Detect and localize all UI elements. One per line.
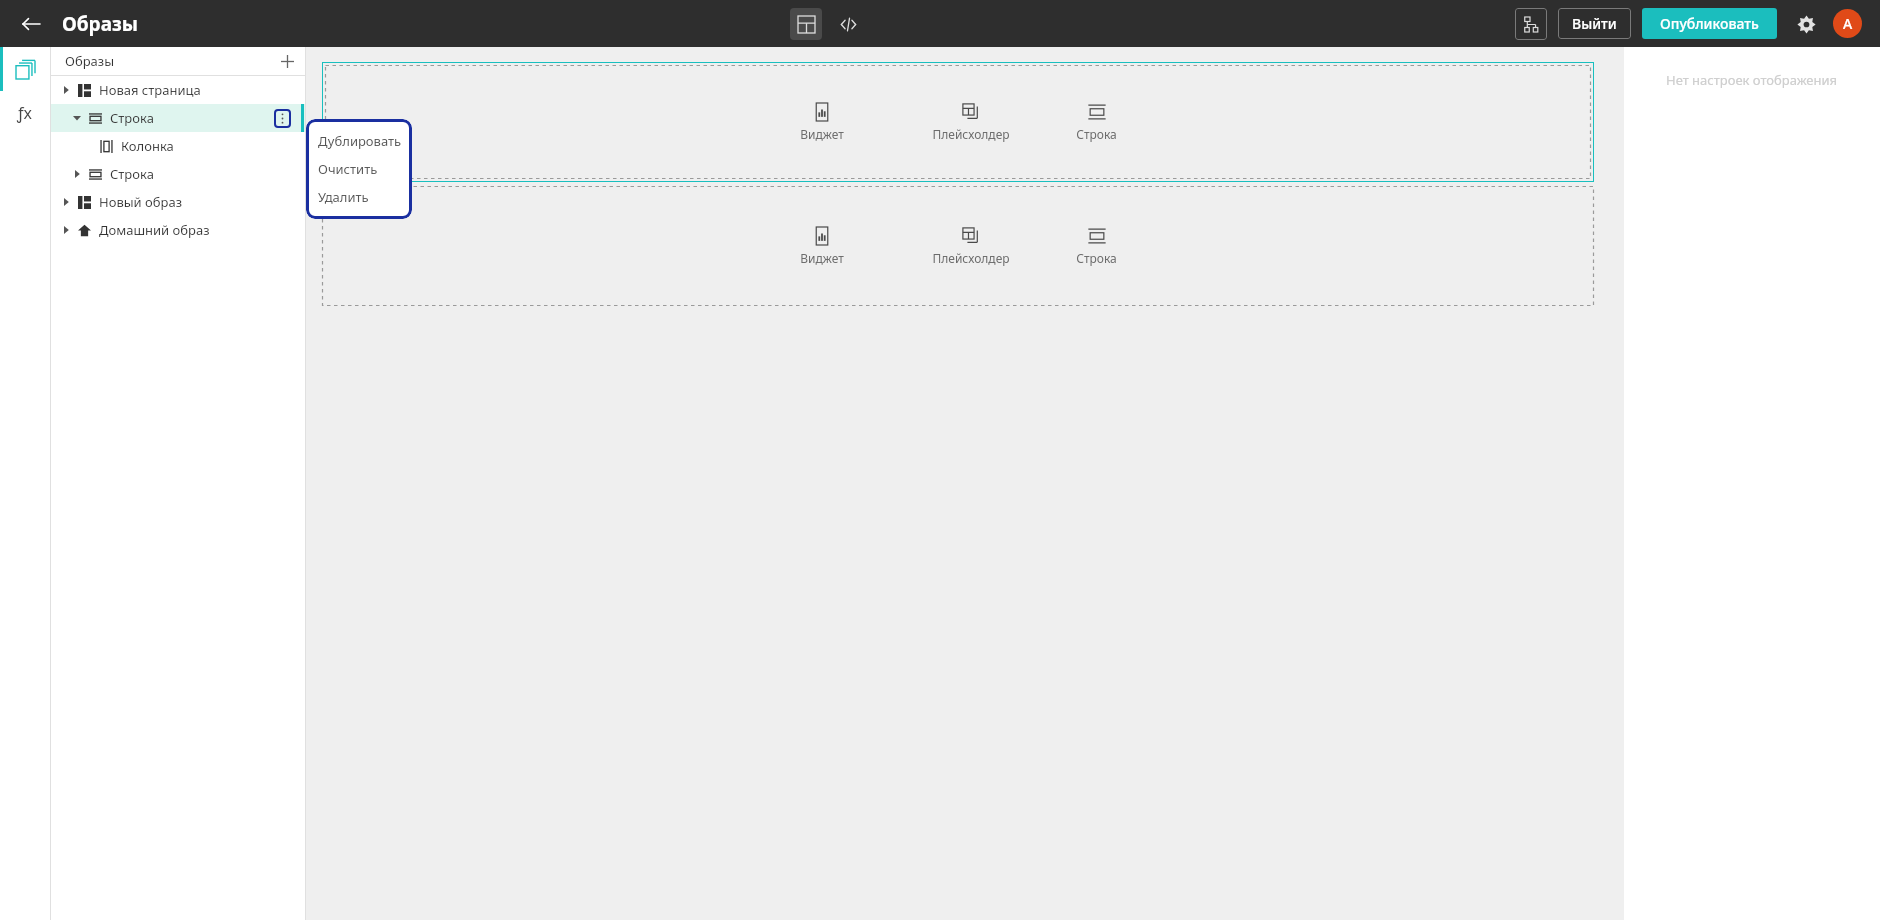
staticText: Плейсхолдер <box>932 250 1010 266</box>
button[interactable]: Колонка <box>51 132 306 160</box>
staticText: Очистить <box>318 160 378 178</box>
button[interactable]: Виджет <box>796 98 848 146</box>
staticText: Удалить <box>318 188 369 206</box>
button[interactable]: Account <box>1833 9 1862 38</box>
staticText: A <box>1843 14 1853 33</box>
button[interactable]: Новый образ <box>51 188 306 216</box>
staticText: ƒx <box>17 102 33 124</box>
button[interactable]: Новая страница <box>51 76 306 104</box>
button[interactable]: Structure <box>1515 8 1547 40</box>
button[interactable]: Functions <box>0 91 50 135</box>
staticText: Новый образ <box>99 193 182 211</box>
button[interactable]: Плейсхолдер <box>928 98 1014 146</box>
button[interactable]: Виджет <box>322 62 1594 182</box>
button[interactable]: Back <box>14 7 48 41</box>
button[interactable]: Designer view <box>790 8 822 40</box>
button[interactable]: Выйти <box>1558 8 1631 39</box>
staticText: Виджет <box>800 250 844 266</box>
button[interactable]: Домашний образ <box>51 216 306 244</box>
button[interactable]: Виджет <box>796 222 848 270</box>
button[interactable]: Виджет <box>322 186 1594 306</box>
button[interactable]: More options <box>274 109 291 128</box>
staticText: Опубликовать <box>1660 14 1759 33</box>
staticText: Плейсхолдер <box>932 126 1010 142</box>
button[interactable]: Дублировать <box>306 127 412 155</box>
button[interactable]: Плейсхолдер <box>928 222 1014 270</box>
button[interactable]: Layers <box>0 47 50 91</box>
button[interactable]: Строка <box>1072 98 1121 146</box>
staticText: Нет настроек отображения <box>1666 71 1838 89</box>
button[interactable]: Опубликовать <box>1642 8 1777 39</box>
button[interactable]: Settings <box>1791 9 1821 39</box>
staticText: Дублировать <box>318 132 402 150</box>
staticText: Домашний образ <box>99 221 210 239</box>
button[interactable]: Очистить <box>306 155 412 183</box>
staticText: Виджет <box>800 126 844 142</box>
button[interactable]: Строка <box>51 160 306 188</box>
staticText: Новая страница <box>99 81 201 99</box>
staticText: Образы <box>62 11 139 37</box>
button[interactable]: Code view <box>832 8 864 40</box>
button[interactable]: Add <box>276 50 298 72</box>
staticText: Строка <box>110 109 154 127</box>
staticText: Колонка <box>121 137 174 155</box>
staticText: Строка <box>110 165 154 183</box>
button[interactable]: Строка <box>51 104 306 132</box>
staticText: Образы <box>65 52 114 70</box>
button[interactable]: Строка <box>1072 222 1121 270</box>
button[interactable]: Удалить <box>306 183 412 211</box>
staticText: Строка <box>1076 250 1117 266</box>
staticText: Строка <box>1076 126 1117 142</box>
staticText: Выйти <box>1572 14 1617 33</box>
